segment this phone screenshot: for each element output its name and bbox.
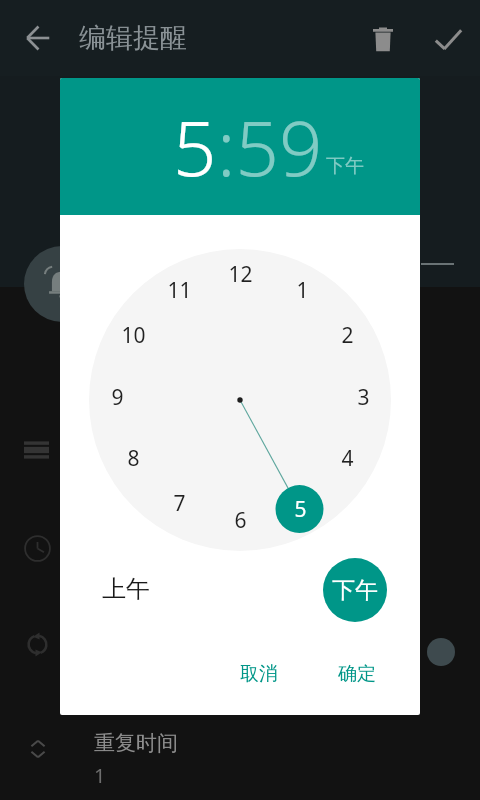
button[interactable]: 3	[343, 377, 383, 417]
button[interactable]: 12	[220, 254, 260, 294]
button[interactable]: Time	[13, 524, 61, 572]
button[interactable]: Repeat	[13, 620, 61, 668]
button[interactable]: 5	[173, 95, 217, 199]
button[interactable]: 4	[327, 438, 367, 478]
button[interactable]: Reminder icon	[24, 246, 100, 322]
button[interactable]: 取消	[224, 650, 294, 698]
staticText: 重复时间	[94, 730, 178, 756]
button[interactable]: 重复时间	[94, 730, 178, 789]
staticText: 编辑提醒	[79, 21, 187, 55]
button[interactable]: Toggle	[427, 638, 455, 666]
button[interactable]: 2	[327, 315, 367, 355]
staticText: 确定	[338, 662, 376, 686]
staticText: 1	[296, 276, 309, 305]
staticText: 4	[341, 444, 354, 473]
button[interactable]: Save	[426, 17, 470, 61]
button[interactable]: :59	[217, 95, 323, 199]
button[interactable]: 下午	[326, 154, 364, 178]
staticText: 8	[127, 444, 140, 473]
button[interactable]: 6	[220, 500, 260, 540]
button[interactable]: 上午	[86, 566, 166, 612]
button[interactable]: 7	[159, 483, 199, 523]
staticText: 7	[173, 489, 186, 518]
staticText: 3	[357, 383, 370, 412]
staticText: 上午	[102, 574, 150, 604]
button[interactable]: Delete	[361, 17, 405, 61]
staticText: 5	[294, 495, 307, 524]
button[interactable]: 8	[113, 438, 153, 478]
button[interactable]: 5	[60, 78, 420, 215]
staticText: 1	[94, 762, 106, 789]
button[interactable]: 10	[113, 315, 153, 355]
staticText: 9	[111, 383, 124, 412]
staticText: 取消	[240, 662, 278, 686]
staticText: 12	[228, 260, 253, 289]
staticText: 2	[341, 321, 354, 350]
button[interactable]: Note	[12, 426, 60, 474]
button[interactable]: Back	[16, 16, 60, 60]
button[interactable]: 5	[280, 489, 320, 529]
staticText: 下午	[332, 576, 378, 605]
staticText: 11	[167, 276, 192, 305]
button[interactable]: 9	[97, 377, 137, 417]
staticText: 10	[121, 321, 146, 350]
button[interactable]: 确定	[322, 650, 392, 698]
button[interactable]: 下午	[323, 558, 387, 622]
button[interactable]: 11	[159, 270, 199, 310]
button[interactable]: 1	[282, 270, 322, 310]
staticText: 6	[234, 506, 247, 535]
